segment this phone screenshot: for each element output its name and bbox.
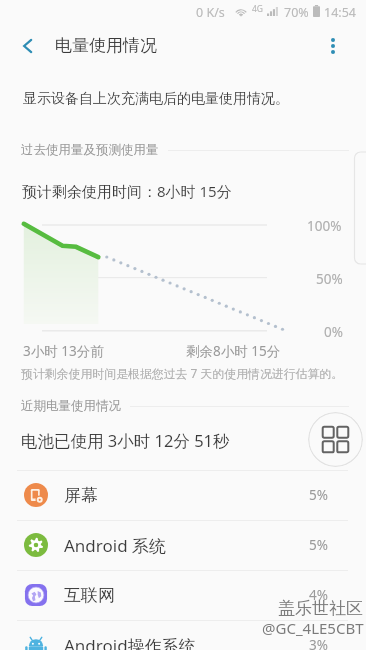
staticText: 显示设备自上次充满电后的电量使用情况。 [23, 90, 289, 108]
staticText: 预计剩余使用时间是根据您过去 7 天的使用情况进行估算的。 [21, 365, 344, 381]
staticText: 电量使用情况 [55, 35, 157, 56]
button[interactable]: Android操作系统 [0, 620, 366, 650]
staticText: @GC_4LE5CBT [262, 618, 364, 638]
staticText: 5% [309, 536, 328, 554]
staticText: 50% [316, 270, 343, 288]
staticText: 过去使用量及预测使用量 [21, 142, 159, 158]
staticText: 互联网 [64, 585, 115, 606]
staticText: Android操作系统 [64, 634, 196, 650]
staticText: 电池已使用 3小时 12分 51秒 [21, 429, 230, 452]
staticText: 近期电量使用情况 [21, 398, 121, 414]
staticText: Android 系统 [64, 534, 167, 557]
staticText: 100% [307, 217, 342, 235]
staticText: 3小时 13分前 [23, 342, 104, 360]
button[interactable]: Back [6, 24, 50, 68]
staticText: 14:54 [324, 4, 356, 21]
staticText: 4G [252, 3, 264, 15]
button[interactable]: 屏幕 [0, 470, 366, 520]
staticText: 4% [309, 586, 328, 604]
staticText: 0% [324, 323, 343, 341]
button[interactable]: Android 系统 [0, 520, 366, 570]
button[interactable]: More options [311, 24, 355, 68]
staticText: 5% [309, 486, 328, 504]
staticText: 0 K/s [196, 4, 225, 21]
staticText: 屏幕 [64, 485, 98, 506]
staticText: 剩余8小时 15分 [186, 342, 281, 360]
staticText: 70% [284, 4, 309, 21]
button[interactable]: Grid view [308, 412, 363, 467]
staticText: 盖乐世社区 [278, 598, 363, 619]
button[interactable]: 互联网 [0, 570, 366, 620]
staticText: 3% [309, 636, 328, 650]
staticText: 预计剩余使用时间：8小时 15分 [22, 181, 232, 201]
